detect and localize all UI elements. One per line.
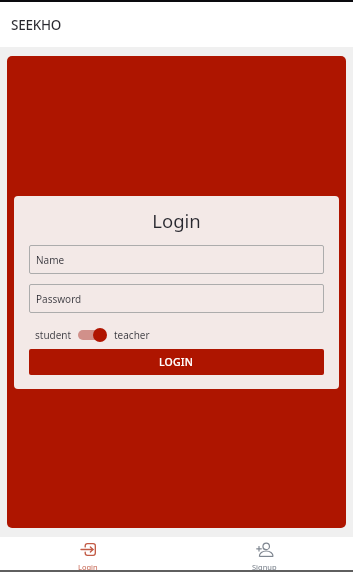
other: Login (81, 543, 96, 556)
staticText: Login (14, 208, 339, 233)
staticText: SEEKHO (11, 16, 62, 34)
staticText: Login (78, 562, 98, 570)
staticText: Name (36, 253, 65, 267)
staticText: Signup (252, 562, 277, 570)
button[interactable]: Role toggle (77, 327, 107, 343)
other: Signup (255, 542, 273, 557)
button[interactable]: LOGIN (29, 349, 324, 375)
staticText: student (35, 328, 72, 342)
button[interactable]: Name (29, 245, 324, 274)
staticText: LOGIN (159, 355, 194, 369)
staticText: teacher (114, 328, 150, 342)
button[interactable]: Signup (176, 537, 353, 570)
button[interactable]: Login (0, 537, 176, 570)
staticText: Password (36, 292, 82, 306)
button[interactable]: Password (29, 284, 324, 313)
